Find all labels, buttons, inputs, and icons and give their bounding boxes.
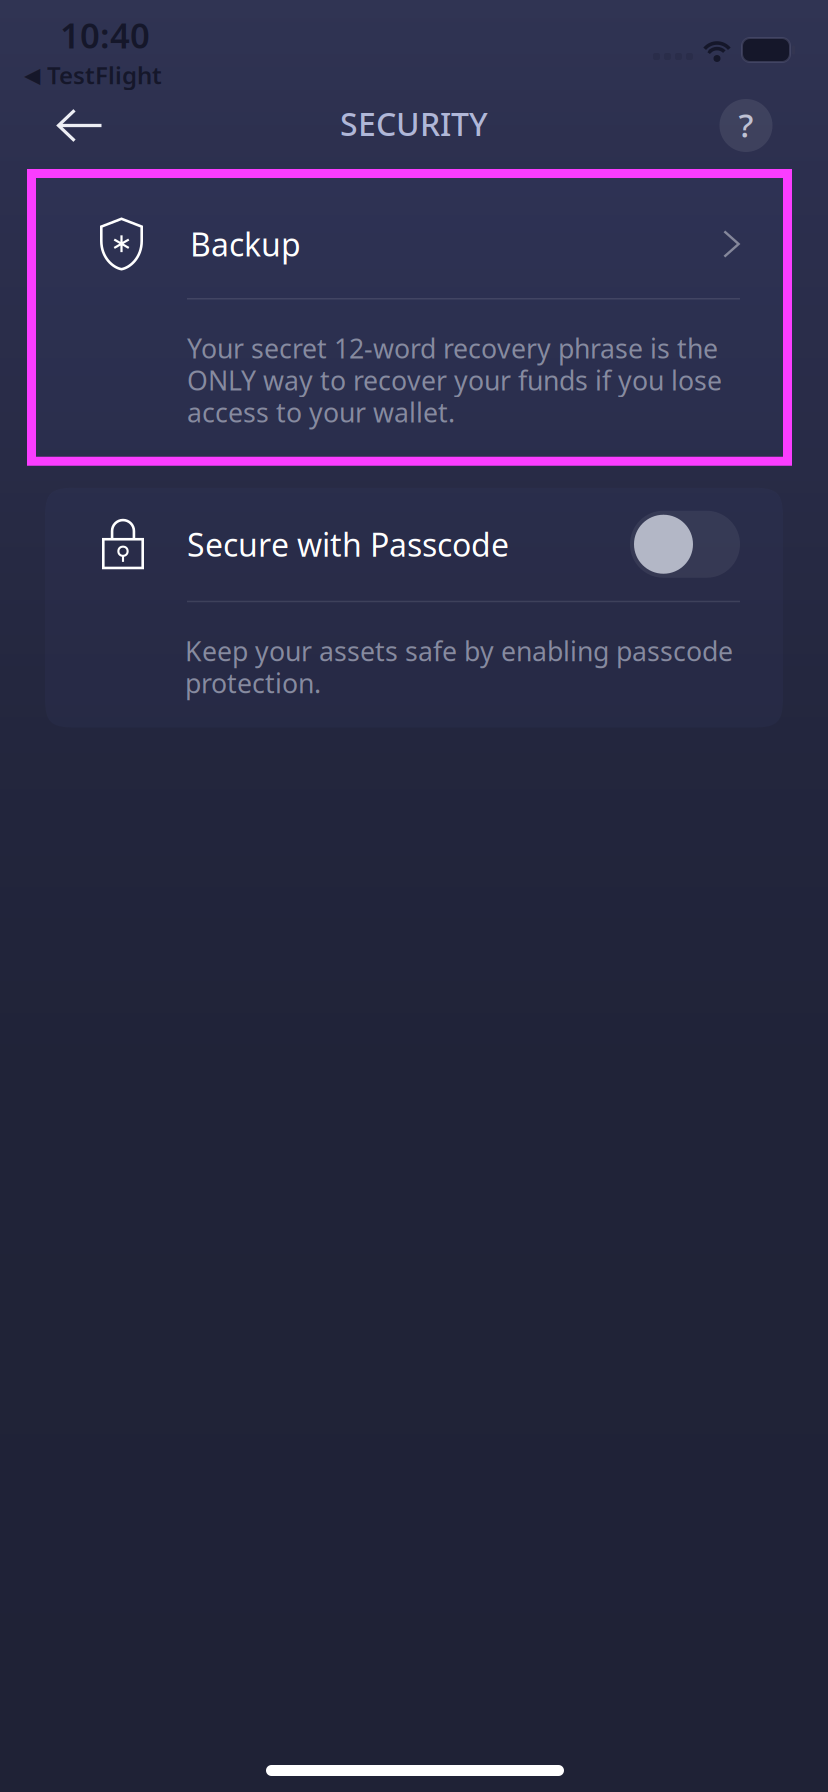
staticText: Keep your assets safe by enabling passco… xyxy=(185,633,733,700)
staticText: ◀ xyxy=(24,63,40,87)
staticText: Your secret 12-word recovery phrase is t… xyxy=(187,330,722,430)
staticText: Backup xyxy=(190,223,301,265)
staticText: Secure with Passcode xyxy=(187,523,509,565)
staticText: 10:40 xyxy=(60,12,150,58)
button[interactable]: Backup xyxy=(0,169,828,466)
staticText: TestFlight xyxy=(47,59,162,91)
button[interactable]: Help xyxy=(698,89,794,162)
staticText: SECURITY xyxy=(340,102,488,145)
button[interactable]: Secure with Passcode xyxy=(630,511,740,578)
staticText: ? xyxy=(738,102,753,147)
button[interactable]: Back xyxy=(28,89,132,162)
